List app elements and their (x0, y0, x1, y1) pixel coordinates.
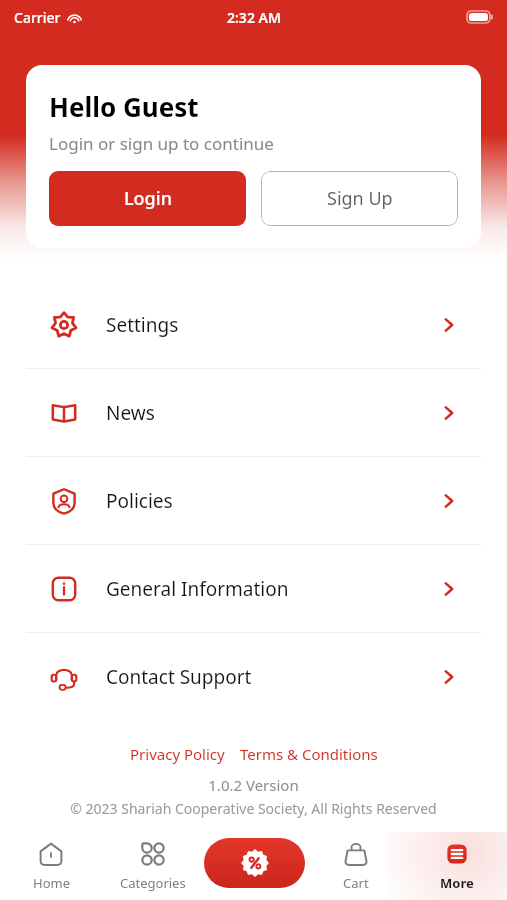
staticText: © 2023 Shariah Cooperative Society, All … (0, 799, 507, 818)
button[interactable]: Login (49, 171, 246, 226)
staticText: Sign Up (327, 186, 393, 211)
button[interactable]: Cart (305, 832, 406, 900)
staticText: Login (124, 186, 172, 211)
button[interactable]: More (406, 832, 507, 900)
staticText: Carrier (14, 8, 61, 27)
staticText: Settings (106, 312, 439, 338)
staticText: Privacy Policy (130, 744, 225, 764)
button[interactable]: Settings (26, 281, 481, 368)
staticText: 1.0.2 Version (0, 775, 507, 795)
staticText: Contact Support (106, 664, 439, 690)
button[interactable]: General Information (26, 545, 481, 632)
staticText: News (106, 400, 439, 426)
button[interactable]: Home (0, 832, 102, 900)
button[interactable]: Terms & Conditions (238, 742, 380, 766)
staticText: Policies (106, 488, 439, 514)
staticText: Home (33, 874, 70, 892)
staticText: Login or sign up to continue (49, 132, 274, 155)
button[interactable]: News (26, 369, 481, 456)
button[interactable]: Categories (102, 832, 204, 900)
staticText: More (440, 874, 474, 892)
button[interactable]: Offers (204, 838, 305, 888)
button[interactable]: Policies (26, 457, 481, 544)
staticText: Categories (120, 874, 186, 892)
staticText: Cart (343, 874, 369, 892)
button[interactable]: Privacy Policy (128, 742, 227, 766)
staticText: Terms & Conditions (240, 744, 378, 764)
staticText: General Information (106, 576, 439, 602)
staticText: 2:32 AM (227, 8, 281, 27)
staticText: Hello Guest (49, 89, 199, 124)
button[interactable]: Sign Up (261, 171, 458, 226)
button[interactable]: Contact Support (26, 633, 481, 720)
